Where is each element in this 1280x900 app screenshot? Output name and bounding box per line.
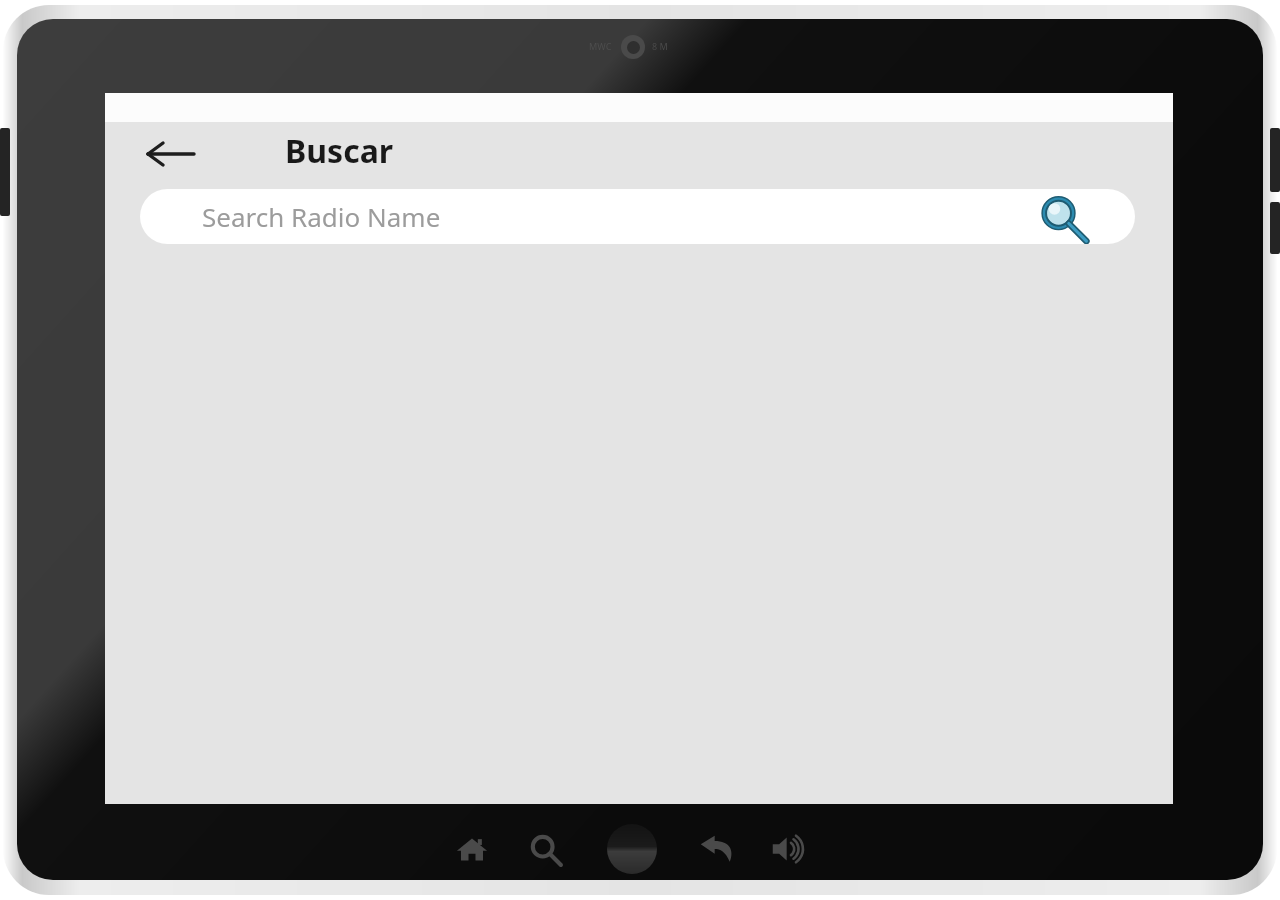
staticText: Buscar [285,129,394,173]
button[interactable]: Back [139,128,205,180]
staticText: MWC [589,40,612,52]
button[interactable]: Search [516,820,574,878]
button[interactable]: Home button [607,824,657,874]
button[interactable]: Home [443,820,501,878]
staticText: Search Radio Name [202,199,441,234]
button[interactable]: Search [1033,189,1091,244]
button[interactable]: Search Radio Name [140,189,1135,244]
staticText: 8 M [652,40,668,52]
button[interactable]: Back [688,820,746,878]
button[interactable]: Volume [760,820,818,878]
